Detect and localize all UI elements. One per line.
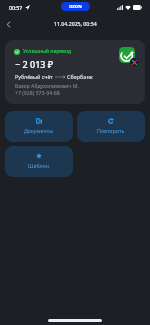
button[interactable]: Документы bbox=[5, 111, 73, 142]
staticText: − 2 013 ₽ bbox=[15, 58, 54, 70]
button[interactable]: Back bbox=[0, 15, 20, 32]
button[interactable]: Успешный перевод bbox=[5, 40, 145, 104]
staticText: Документы bbox=[24, 127, 54, 134]
staticText: OZON bbox=[69, 4, 82, 10]
button[interactable]: Повторить bbox=[77, 111, 145, 142]
staticText: Шаблон bbox=[28, 162, 50, 169]
staticText: 00:57 bbox=[9, 4, 23, 11]
button[interactable]: Шаблон bbox=[5, 146, 73, 177]
staticText: Повторить bbox=[97, 127, 125, 134]
staticText: Бахор Абдухолимович М. bbox=[15, 82, 79, 89]
staticText: Успешный перевод bbox=[23, 48, 72, 55]
staticText: Рублёвый счёт bbox=[15, 73, 53, 80]
staticText: +7 (928) 573-94-68 bbox=[15, 89, 60, 96]
staticText: Сбербанк bbox=[67, 73, 93, 80]
staticText: 11.04.2025, 00:54 bbox=[54, 20, 97, 27]
